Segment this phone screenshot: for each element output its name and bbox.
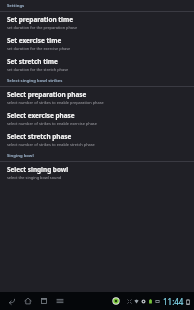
staticText: select number of strikes to enable stret… — [7, 142, 95, 147]
button[interactable]: Back — [4, 293, 20, 309]
button[interactable]: Set exercise time — [0, 33, 194, 54]
button[interactable]: Select exercise phase — [0, 108, 194, 129]
staticText: set duration for the stretch phase — [7, 67, 69, 72]
staticText: 11:44 — [163, 296, 184, 307]
staticText: Set stretch time — [7, 57, 58, 66]
staticText: Select singing bowl — [7, 165, 69, 174]
staticText: set duration for the preparation phase — [7, 25, 78, 30]
staticText: Settings — [7, 3, 25, 9]
button[interactable]: Recent apps — [36, 293, 52, 309]
staticText: Select stretch phase — [7, 132, 72, 141]
button[interactable]: Menu — [52, 293, 68, 309]
staticText: select number of strikes to enable prepa… — [7, 100, 104, 105]
staticText: set duration for the exercise phase — [7, 46, 71, 51]
button[interactable]: Select singing bowl — [0, 162, 194, 183]
button[interactable]: Set preparation time — [0, 12, 194, 33]
button[interactable]: Select stretch phase — [0, 129, 194, 150]
staticText: Set preparation time — [7, 15, 74, 24]
button[interactable]: Home — [20, 293, 36, 309]
staticText: Singing bowl — [7, 153, 34, 159]
button[interactable]: Notification — [109, 294, 123, 308]
staticText: select number of strikes to enable exerc… — [7, 121, 97, 126]
staticText: Select singing bowl strikes — [7, 78, 63, 84]
staticText: Select exercise phase — [7, 111, 75, 120]
button[interactable]: Status icons and clock — [126, 296, 191, 307]
staticText: Select preparation phase — [7, 90, 87, 99]
staticText: Set exercise time — [7, 36, 62, 45]
staticText: select the singing bowl sound — [7, 175, 62, 180]
button[interactable]: Select preparation phase — [0, 87, 194, 108]
button[interactable]: Set stretch time — [0, 54, 194, 75]
